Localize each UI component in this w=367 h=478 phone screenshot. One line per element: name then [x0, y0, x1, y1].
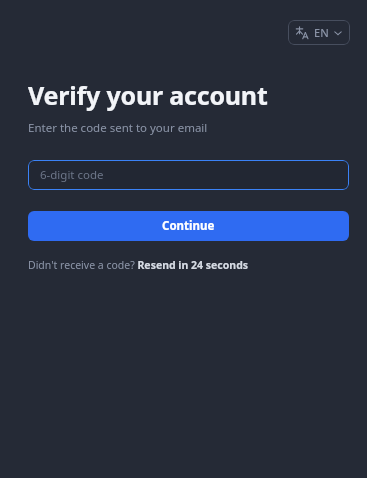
button[interactable]: Change language, English [288, 20, 350, 45]
staticText: Verify your account [28, 78, 268, 112]
staticText: Continue [162, 218, 215, 234]
button[interactable]: Continue [28, 211, 349, 241]
button[interactable]: Didn't receive a code? Resend in 24 seco… [28, 258, 249, 272]
staticText: Didn't receive a code? Resend in 24 seco… [28, 258, 249, 272]
staticText: 6-digit code [40, 167, 104, 183]
button[interactable]: 6-digit code input [28, 160, 349, 190]
staticText: Enter the code sent to your email [28, 120, 208, 136]
staticText: EN [314, 25, 329, 40]
